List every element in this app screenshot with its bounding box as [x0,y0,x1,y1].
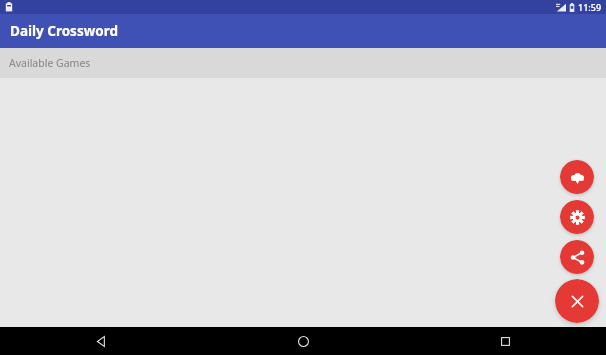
button[interactable]: Settings [560,200,594,234]
button[interactable]: Back [0,327,202,355]
staticText: 11:59 [578,1,602,13]
button[interactable]: Download games [560,160,594,194]
button[interactable]: Home [202,327,404,355]
staticText: Available Games [9,56,91,70]
button[interactable]: Share [560,240,594,274]
button[interactable]: Close [555,279,599,323]
staticText: Daily Crossword [10,22,118,40]
button[interactable]: Recents [404,327,606,355]
